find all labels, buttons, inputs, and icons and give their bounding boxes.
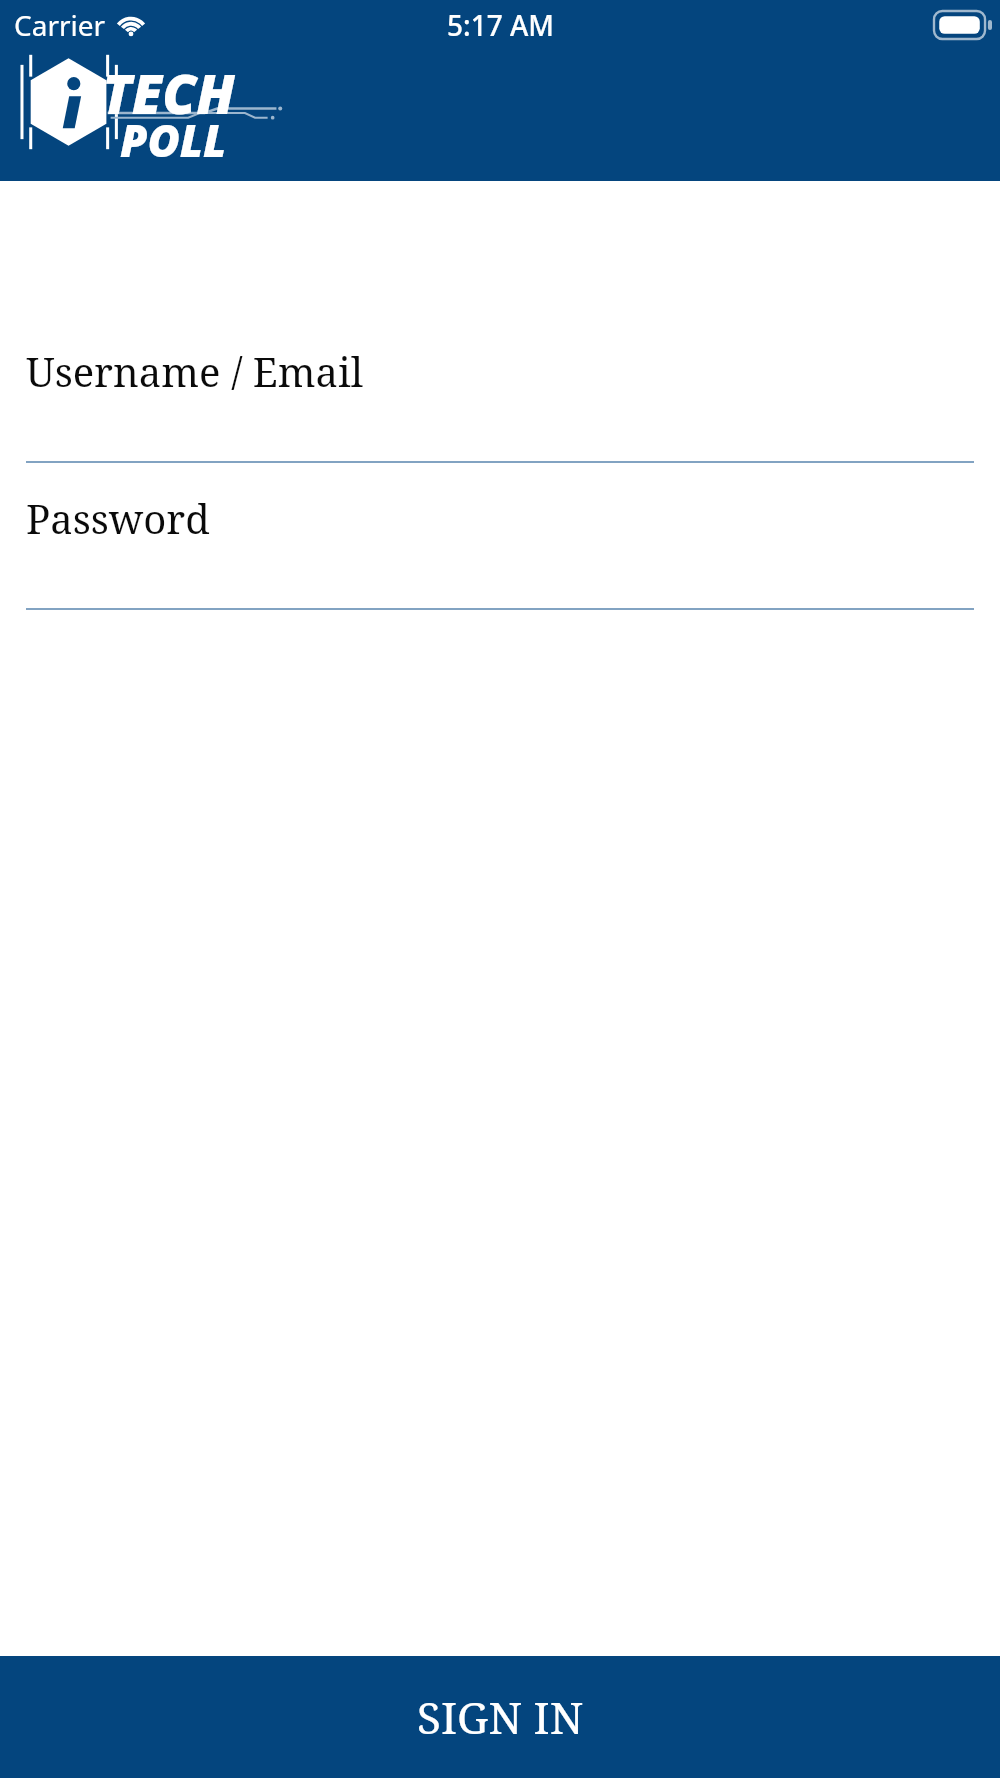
button[interactable]: Username / Email [0, 344, 1000, 463]
staticText: 5:17 AM [447, 6, 554, 44]
staticText: SIGN IN [417, 1687, 584, 1747]
staticText: Carrier [14, 6, 106, 44]
button[interactable]: Password [0, 491, 1000, 610]
staticText: TECH [102, 56, 235, 130]
button[interactable]: SIGN IN [0, 1656, 1000, 1778]
staticText: Username / Email [26, 344, 364, 390]
staticText: POLL [120, 110, 227, 170]
other: Tech Poll logo [32, 56, 284, 148]
staticText: Password [26, 491, 210, 537]
